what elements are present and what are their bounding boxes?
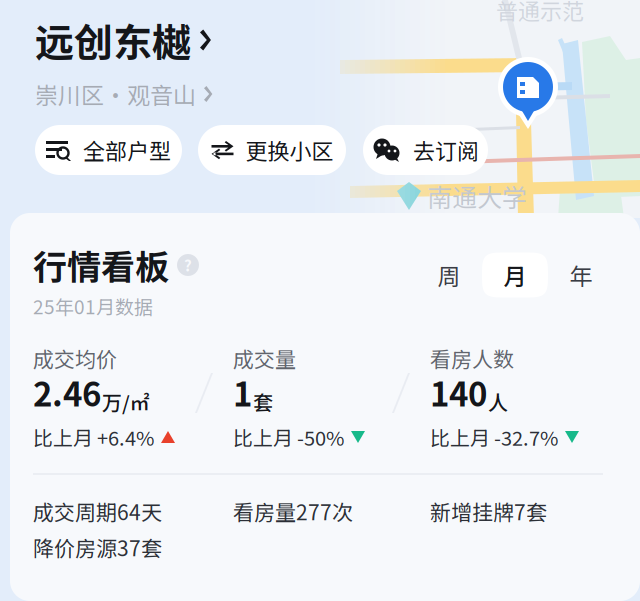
- staticText: 远创东樾: [35, 12, 191, 68]
- staticText: 成交量: [233, 343, 296, 373]
- staticText: 140: [430, 368, 487, 416]
- button[interactable]: 月: [482, 252, 548, 297]
- staticText: 万/㎡: [102, 387, 150, 416]
- button[interactable]: 周: [416, 252, 482, 297]
- staticText: 看房量277次: [233, 496, 353, 526]
- staticText: 看房人数: [430, 343, 514, 373]
- staticText: 人: [488, 387, 508, 416]
- staticText: 月: [503, 258, 526, 292]
- staticText: ?: [184, 254, 192, 276]
- staticText: 周: [437, 258, 460, 292]
- staticText: 南通大学: [427, 178, 527, 214]
- button[interactable]: 去订阅: [363, 125, 488, 175]
- staticText: 更换小区: [245, 134, 333, 166]
- staticText: 套: [253, 387, 273, 416]
- button[interactable]: 崇川区·观音山: [35, 77, 213, 111]
- staticText: 去订阅: [413, 134, 479, 166]
- staticText: 成交周期64天: [33, 496, 162, 526]
- staticText: 2.46: [33, 368, 101, 416]
- staticText: 普通示范: [496, 0, 584, 26]
- staticText: 25年01月数据: [33, 292, 153, 320]
- staticText: 成交均价: [33, 343, 117, 373]
- button[interactable]: 更换小区: [198, 125, 346, 175]
- staticText: 行情看板: [33, 240, 169, 290]
- button[interactable]: 全部户型: [35, 125, 182, 175]
- button[interactable]: 年: [548, 252, 614, 297]
- staticText: 全部户型: [83, 134, 171, 166]
- staticText: 1: [233, 368, 252, 416]
- staticText: 比上月 -32.7%: [430, 422, 558, 451]
- staticText: 比上月 +6.4%: [33, 422, 154, 451]
- staticText: 新增挂牌7套: [430, 496, 547, 526]
- staticText: 年: [569, 258, 592, 292]
- staticText: 比上月 -50%: [233, 422, 344, 451]
- staticText: 降价房源37套: [33, 532, 162, 562]
- button[interactable]: 远创东樾: [35, 12, 212, 68]
- staticText: 崇川区·观音山: [35, 77, 196, 111]
